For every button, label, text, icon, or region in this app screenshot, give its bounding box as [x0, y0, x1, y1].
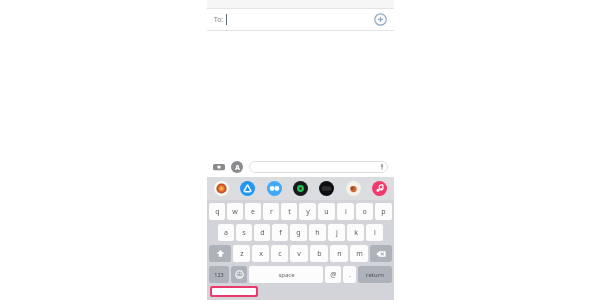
button[interactable]: .: [343, 266, 356, 283]
button[interactable]: 123: [209, 266, 229, 283]
staticText: A: [235, 163, 240, 172]
button[interactable]: iMessage app 2: [240, 181, 255, 196]
button[interactable]: Backspace: [370, 245, 392, 262]
button[interactable]: e: [245, 203, 261, 220]
button[interactable]: m: [350, 245, 368, 262]
staticText: q: [215, 207, 220, 217]
staticText: h: [315, 228, 320, 238]
button[interactable]: q: [209, 203, 225, 220]
button[interactable]: u: [318, 203, 335, 220]
button[interactable]: Add contact: [374, 13, 387, 26]
button[interactable]: d: [254, 224, 270, 241]
button[interactable]: o: [356, 203, 373, 220]
button[interactable]: Highlight: [210, 286, 258, 297]
button[interactable]: p: [375, 203, 392, 220]
staticText: o: [362, 207, 367, 217]
button[interactable]: Shift: [209, 245, 231, 262]
button[interactable]: k: [347, 224, 364, 241]
button[interactable]: To:: [207, 9, 394, 30]
staticText: l: [374, 228, 376, 238]
staticText: v: [297, 249, 301, 259]
button[interactable]: n: [330, 245, 348, 262]
staticText: @: [330, 270, 337, 280]
button[interactable]: t: [281, 203, 297, 220]
button[interactable]: f: [272, 224, 288, 241]
button[interactable]: w: [227, 203, 243, 220]
button[interactable]: y: [299, 203, 316, 220]
button[interactable]: App Store: [231, 161, 243, 173]
button[interactable]: z: [233, 245, 250, 262]
button[interactable]: iMessage app 5: [319, 181, 334, 196]
button[interactable]: j: [328, 224, 345, 241]
button[interactable]: v: [290, 245, 308, 262]
button[interactable]: c: [271, 245, 288, 262]
button[interactable]: s: [236, 224, 252, 241]
button[interactable]: return: [358, 266, 392, 283]
button[interactable]: Camera: [213, 161, 225, 173]
button[interactable]: Emoji: [231, 266, 247, 283]
button[interactable]: i: [337, 203, 354, 220]
staticText: .: [349, 270, 351, 280]
button[interactable]: l: [366, 224, 383, 241]
staticText: r: [270, 207, 273, 217]
button[interactable]: [249, 161, 388, 173]
staticText: x: [259, 249, 263, 259]
button[interactable]: space: [249, 266, 323, 283]
button[interactable]: x: [252, 245, 269, 262]
staticText: p: [381, 207, 386, 217]
button[interactable]: @: [325, 266, 341, 283]
button[interactable]: b: [310, 245, 328, 262]
staticText: j: [336, 228, 338, 238]
staticText: n: [337, 249, 342, 259]
button[interactable]: iMessage app 6: [346, 181, 361, 196]
staticText: m: [356, 249, 363, 259]
staticText: b: [317, 249, 322, 259]
button[interactable]: iMessage app 1: [214, 181, 229, 196]
button[interactable]: iMessage app 4: [293, 181, 308, 196]
button[interactable]: iMessage app 7: [372, 181, 387, 196]
staticText: 123: [214, 271, 224, 278]
staticText: e: [251, 207, 255, 217]
button[interactable]: r: [263, 203, 279, 220]
staticText: u: [324, 207, 329, 217]
button[interactable]: a: [218, 224, 234, 241]
staticText: d: [260, 228, 265, 238]
staticText: t: [288, 207, 291, 217]
button[interactable]: g: [290, 224, 307, 241]
staticText: To:: [214, 15, 223, 24]
staticText: g: [296, 228, 301, 238]
staticText: a: [224, 228, 228, 238]
staticText: space: [278, 271, 295, 279]
staticText: s: [242, 228, 246, 238]
staticText: i: [345, 207, 347, 217]
staticText: w: [232, 207, 238, 217]
button[interactable]: h: [309, 224, 326, 241]
button[interactable]: iMessage app 3: [267, 181, 282, 196]
staticText: y: [306, 207, 310, 217]
staticText: return: [366, 271, 384, 279]
staticText: f: [279, 228, 282, 238]
staticText: z: [240, 249, 244, 259]
staticText: c: [278, 249, 282, 259]
staticText: k: [354, 228, 358, 238]
